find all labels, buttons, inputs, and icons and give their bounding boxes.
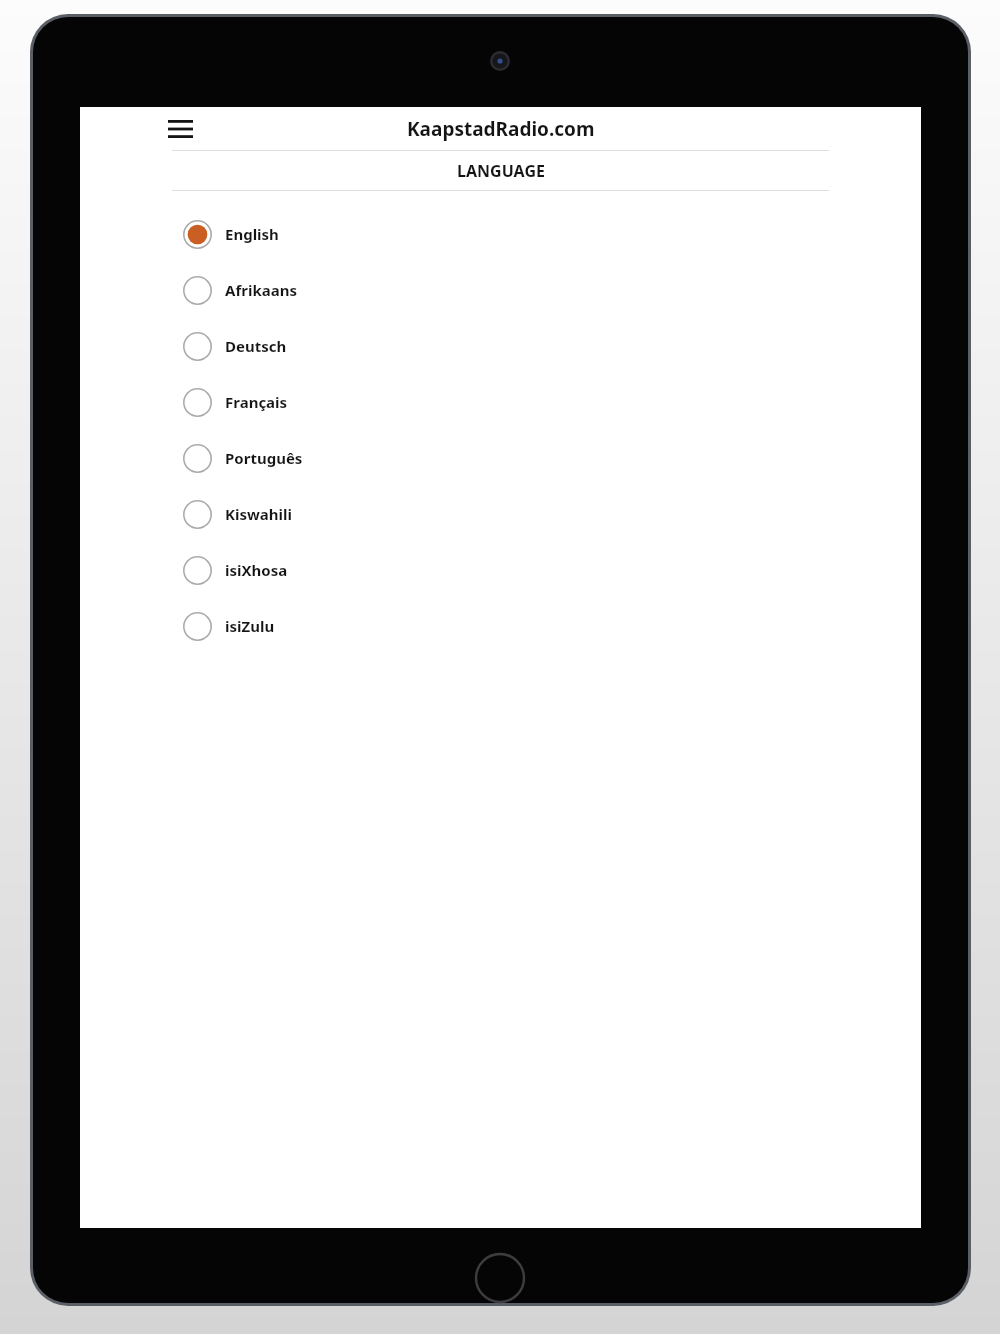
staticText: isiXhosa (225, 560, 288, 580)
staticText: LANGUAGE (457, 160, 545, 182)
staticText: KaapstadRadio.com (407, 116, 595, 142)
staticText: English (225, 224, 279, 244)
staticText: Afrikaans (225, 280, 297, 300)
button[interactable]: Kiswahili (80, 486, 921, 542)
button[interactable]: Deutsch (80, 318, 921, 374)
button[interactable]: isiXhosa (80, 542, 921, 598)
button[interactable]: Français (80, 374, 921, 430)
button[interactable]: Menu (159, 108, 201, 150)
button[interactable]: English (80, 206, 921, 262)
staticText: isiZulu (225, 616, 275, 636)
button[interactable]: Português (80, 430, 921, 486)
button[interactable]: Afrikaans (80, 262, 921, 318)
staticText: Français (225, 392, 288, 412)
staticText: Deutsch (225, 336, 287, 356)
staticText: Português (225, 448, 303, 468)
staticText: Kiswahili (225, 504, 292, 524)
button[interactable]: isiZulu (80, 598, 921, 654)
